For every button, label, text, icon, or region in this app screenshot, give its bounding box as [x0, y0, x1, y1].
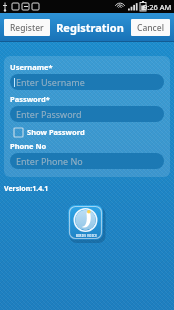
staticText: Register [10, 22, 44, 34]
staticText: BIRDS VOICE [76, 234, 98, 238]
button[interactable]: Enter Password [10, 106, 164, 122]
staticText: Registration [56, 20, 124, 35]
button[interactable]: Cancel [131, 19, 170, 36]
button[interactable]: Show Password [10, 126, 85, 138]
staticText: Password* [10, 94, 50, 104]
staticText: Enter Phone No [16, 155, 83, 167]
button[interactable]: Register [4, 19, 50, 36]
staticText: Username* [10, 62, 53, 72]
staticText: Version:1.4.1 [4, 184, 49, 194]
button[interactable]: Enter Username [10, 74, 164, 90]
staticText: Enter Password [16, 108, 82, 120]
staticText: Enter Username [16, 76, 85, 88]
staticText: Show Password [27, 127, 85, 137]
other: App logo [67, 204, 107, 244]
button[interactable]: Enter Phone No [10, 153, 164, 169]
staticText: 9:26 AM [143, 2, 172, 12]
staticText: Phone No [10, 141, 47, 151]
staticText: Cancel [137, 22, 164, 34]
